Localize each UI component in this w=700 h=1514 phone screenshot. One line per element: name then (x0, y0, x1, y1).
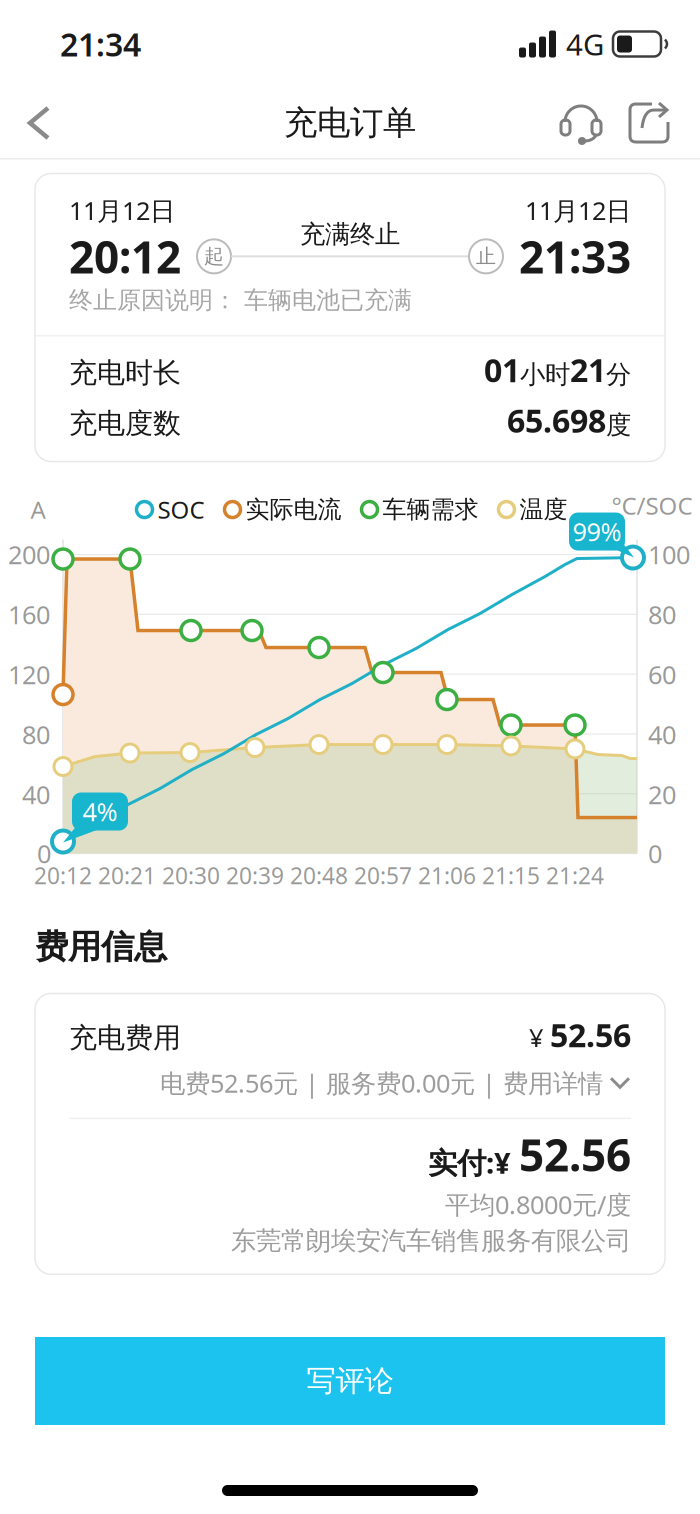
staticText: 0 (648, 837, 662, 870)
staticText: SOC (157, 494, 204, 525)
staticText: 实际电流 (245, 495, 341, 524)
staticText: 终止原因说明： 车辆电池已充满 (69, 286, 412, 315)
button[interactable]: 电费52.56元 | 服务费0.00元 | 费用详情 (160, 1066, 631, 1100)
staticText: 40 (648, 718, 676, 751)
staticText: 11月12日 (525, 193, 631, 227)
staticText: 160 (8, 598, 50, 631)
staticText: 东莞常朗埃安汽车销售服务有限公司 (231, 1225, 631, 1256)
staticText: 20:21 (98, 860, 156, 891)
staticText: 车辆需求 (382, 495, 478, 524)
staticText: 100 (648, 538, 690, 571)
staticText: 费用信息 (35, 926, 167, 967)
staticText: 充电费用 (69, 1021, 181, 1055)
staticText: 4% (82, 795, 117, 828)
staticText: 21:24 (546, 860, 604, 891)
staticText: 20:39 (226, 860, 284, 891)
staticText: A (30, 494, 45, 525)
staticText: 充电时长 (69, 356, 181, 390)
staticText: 实付:¥ 52.56 (428, 1125, 631, 1183)
staticText: 200 (8, 538, 50, 571)
staticText: ¥ 52.56 (529, 1013, 631, 1056)
button[interactable]: Back (0, 88, 58, 158)
staticText: 60 (648, 658, 676, 691)
staticText: 65.698度 (507, 399, 631, 441)
staticText: 20 (648, 778, 676, 811)
staticText: 20:30 (162, 860, 220, 891)
staticText: 充满终止 (300, 219, 400, 250)
staticText: 起 (204, 244, 224, 269)
staticText: 21:33 (519, 227, 631, 285)
staticText: 止 (476, 244, 496, 269)
staticText: 40 (22, 778, 50, 811)
staticText: 21:15 (482, 860, 540, 891)
staticText: 120 (8, 658, 50, 691)
staticText: 21:06 (418, 860, 476, 891)
staticText: 21:34 (60, 23, 141, 65)
button[interactable]: Share (602, 88, 700, 158)
staticText: °C/SOC (611, 490, 692, 521)
staticText: 20:12 (34, 860, 92, 891)
staticText: 充电度数 (69, 406, 181, 441)
staticText: 电费52.56元 | 服务费0.00元 | 费用详情 (160, 1066, 603, 1100)
button[interactable]: Customer service (560, 88, 602, 158)
staticText: 01小时21分 (484, 348, 631, 391)
button[interactable]: 写评论 (35, 1337, 665, 1425)
staticText: 温度 (519, 495, 567, 524)
staticText: 11月12日 (69, 193, 175, 227)
staticText: 80 (648, 598, 676, 631)
staticText: 20:12 (69, 227, 181, 285)
staticText: 0 (37, 837, 51, 870)
staticText: 平均0.8000元/度 (445, 1187, 631, 1221)
staticText: 20:48 (290, 860, 348, 891)
staticText: 写评论 (306, 1363, 393, 1399)
staticText: 80 (22, 718, 50, 751)
staticText: 20:57 (354, 860, 412, 891)
staticText: 充电订单 (284, 102, 416, 143)
staticText: 99% (572, 515, 621, 548)
staticText: 4G (566, 24, 604, 63)
